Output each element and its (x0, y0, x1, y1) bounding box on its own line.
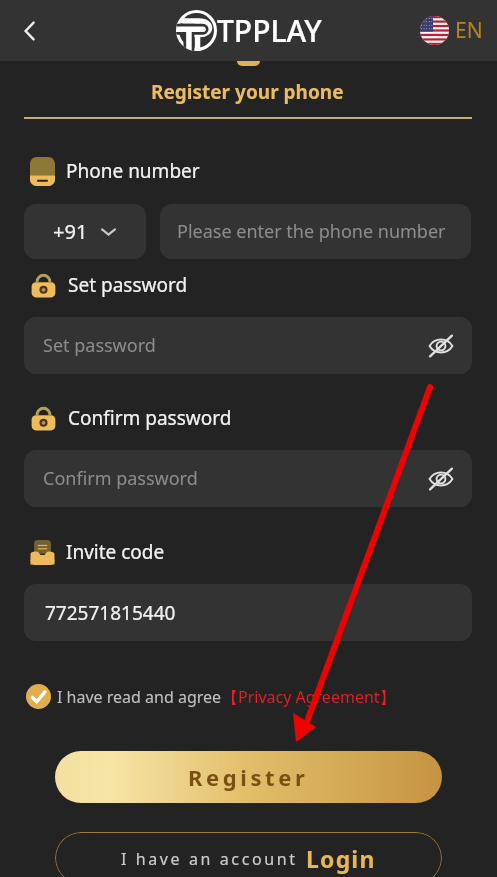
button[interactable]: +91 (24, 204, 146, 259)
staticText: I have read and agree (57, 686, 222, 708)
staticText: Please enter the phone number (177, 219, 446, 244)
staticText: TPPLAY (217, 10, 322, 51)
button[interactable]: Please enter the phone number (160, 204, 471, 259)
button[interactable]: 772571815440 (24, 584, 472, 641)
staticText: Confirm password (68, 405, 232, 431)
staticText: Confirm password (43, 466, 198, 491)
staticText: Register your phone (151, 79, 344, 105)
staticText: 【Privacy Agreement】 (222, 686, 396, 708)
staticText: Phone number (66, 158, 200, 184)
button[interactable]: I have read and agree (26, 683, 396, 710)
staticText: Invite code (66, 539, 165, 565)
button[interactable]: Register (55, 751, 442, 803)
staticText: EN (455, 16, 483, 45)
button[interactable]: EN (420, 16, 483, 45)
button[interactable]: Confirm password (24, 450, 472, 507)
button[interactable]: I have an account (55, 832, 442, 877)
staticText: 772571815440 (45, 600, 176, 626)
staticText: I have an account (121, 848, 298, 870)
button[interactable]: Toggle password visibility (422, 460, 460, 498)
staticText: Set password (68, 272, 188, 298)
staticText: +91 (53, 218, 88, 245)
button[interactable]: Set password (24, 317, 472, 374)
button[interactable]: Back (8, 9, 52, 53)
button[interactable]: Toggle password visibility (422, 327, 460, 365)
staticText: Register (188, 762, 309, 792)
staticText: Login (306, 843, 376, 874)
staticText: Set password (43, 333, 156, 358)
